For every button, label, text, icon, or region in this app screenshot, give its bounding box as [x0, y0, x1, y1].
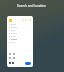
button[interactable]	[9, 38, 17, 40]
staticText: Search and location	[17, 4, 47, 8]
button[interactable]: Open	[25, 62, 31, 65]
button[interactable]	[9, 32, 17, 34]
button[interactable]	[9, 29, 15, 31]
button[interactable]	[9, 35, 16, 37]
button[interactable]: Search and location	[0, 0, 64, 11]
button[interactable]	[9, 23, 16, 25]
button[interactable]	[9, 26, 17, 28]
button[interactable]	[9, 41, 15, 43]
